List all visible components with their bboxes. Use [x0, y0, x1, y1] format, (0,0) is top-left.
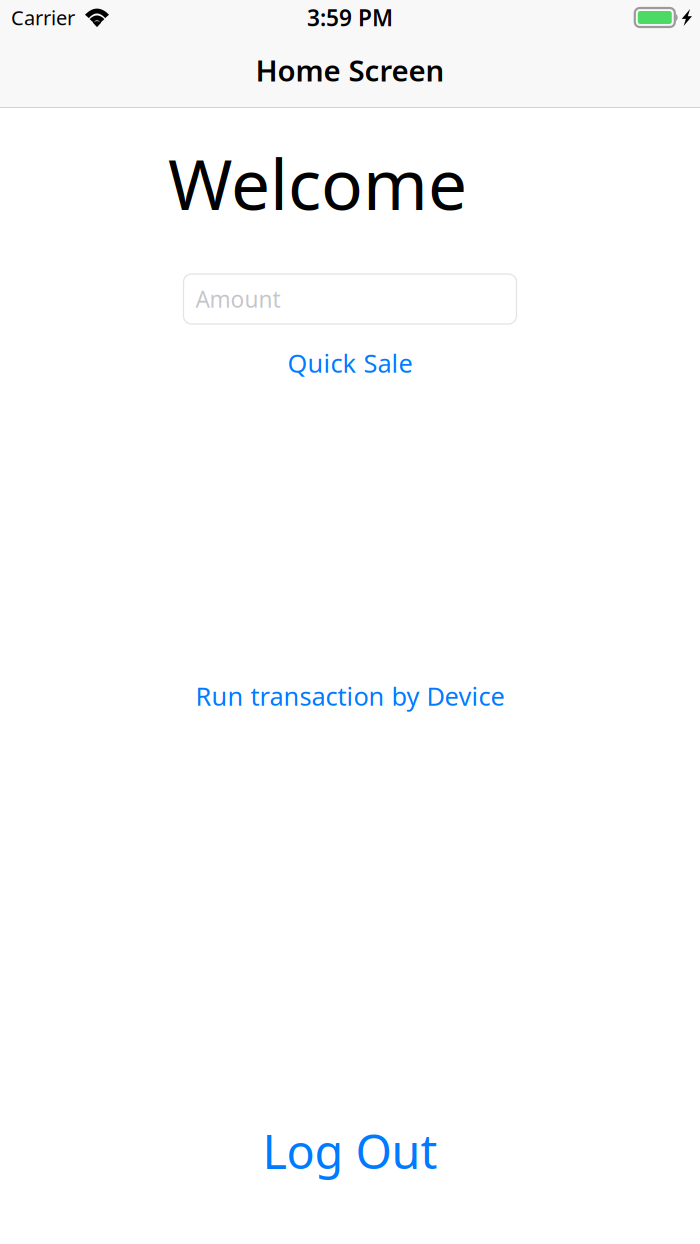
- button[interactable]: Quick Sale: [250, 344, 450, 382]
- staticText: Welcome: [168, 137, 467, 229]
- staticText: Carrier: [11, 4, 75, 31]
- staticText: Amount: [195, 284, 280, 314]
- button[interactable]: Run transaction by Device: [150, 677, 550, 715]
- staticText: Run transaction by Device: [195, 679, 504, 713]
- button[interactable]: Amount: [183, 274, 516, 324]
- staticText: 3:59 PM: [307, 2, 393, 32]
- button[interactable]: Log Out: [220, 1125, 480, 1177]
- staticText: Quick Sale: [287, 346, 412, 380]
- staticText: Home Screen: [255, 50, 444, 89]
- staticText: Log Out: [262, 1120, 437, 1182]
